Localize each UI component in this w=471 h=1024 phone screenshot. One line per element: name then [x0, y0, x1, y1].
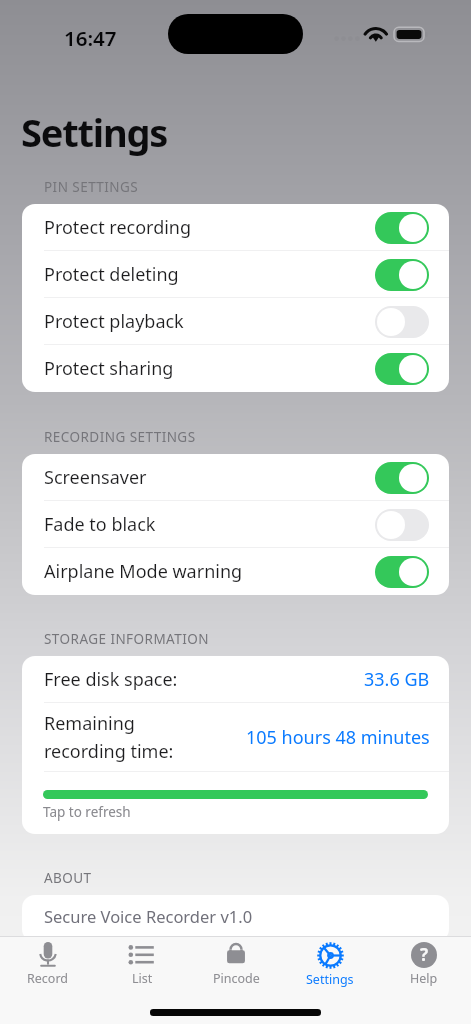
staticText: Fade to black — [44, 512, 375, 537]
button[interactable]: List — [95, 937, 189, 994]
staticText: Protect playback — [44, 309, 375, 334]
staticText: List — [132, 970, 153, 987]
button[interactable]: Pincode — [189, 937, 283, 994]
staticText: ? — [420, 943, 429, 966]
button[interactable]: Protect playback — [22, 298, 449, 345]
staticText: 105 hours 48 minutes — [246, 725, 430, 750]
staticText: STORAGE INFORMATION — [44, 630, 209, 648]
staticText: Settings — [306, 971, 354, 988]
staticText: 33.6 GB — [364, 667, 430, 692]
staticText: PIN SETTINGS — [44, 178, 139, 196]
staticText: Screensaver — [44, 465, 375, 490]
staticText: 16:47 — [64, 24, 117, 52]
staticText: ABOUT — [44, 869, 92, 887]
staticText: Settings — [21, 106, 168, 158]
staticText: Tap to refresh — [43, 803, 131, 821]
staticText: Remaining — [44, 711, 135, 736]
button[interactable]: Protect deleting — [22, 251, 449, 298]
button[interactable]: Tap to refresh — [22, 772, 449, 834]
button[interactable]: Protect sharing — [22, 345, 449, 392]
staticText: Protect sharing — [44, 356, 375, 381]
button[interactable]: Protect recording — [22, 204, 449, 251]
staticText: Secure Voice Recorder v1.0 — [44, 905, 253, 927]
staticText: RECORDING SETTINGS — [44, 428, 196, 446]
staticText: Airplane Mode warning — [44, 559, 375, 584]
staticText: Free disk space: — [44, 667, 364, 692]
button[interactable]: Fade to black — [22, 501, 449, 548]
button[interactable]: Settings — [283, 937, 377, 994]
button[interactable]: Screensaver — [22, 454, 449, 501]
staticText: recording time: — [44, 739, 174, 764]
staticText: Pincode — [213, 970, 260, 987]
staticText: Protect deleting — [44, 262, 375, 287]
staticText: Help — [410, 970, 438, 987]
button[interactable]: Record — [0, 937, 95, 994]
staticText: Record — [27, 970, 68, 987]
button[interactable]: ? — [377, 937, 471, 994]
staticText: Protect recording — [44, 215, 375, 240]
button[interactable]: Airplane Mode warning — [22, 548, 449, 595]
